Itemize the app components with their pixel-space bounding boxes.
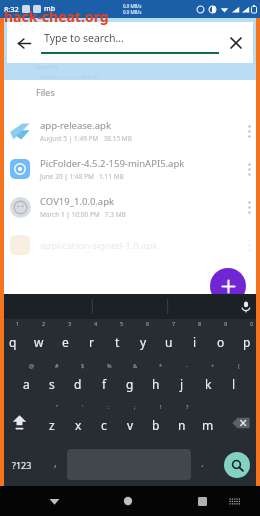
button[interactable]: Back (38, 486, 70, 516)
button[interactable]: More options (238, 112, 260, 150)
staticText: s (49, 376, 55, 392)
staticText: . (201, 456, 204, 470)
staticText: v (127, 417, 134, 433)
button[interactable]: Clear (219, 26, 253, 60)
staticText: app-release.apk (40, 119, 112, 132)
staticText: COV19_1.0.0.apk (40, 195, 115, 208)
staticText: k (205, 376, 212, 392)
button[interactable]: m (195, 402, 221, 443)
button[interactable]: 3 (52, 319, 78, 361)
button[interactable]: + (195, 361, 221, 402)
button[interactable]: Switch keyboard (218, 486, 250, 516)
button[interactable]: application-signed-1.0.apk (0, 226, 260, 264)
button[interactable]: ' (65, 402, 91, 443)
button[interactable]: More options (238, 226, 260, 264)
staticText: 5 (120, 320, 124, 327)
staticText: l (232, 376, 236, 392)
button[interactable]: 7 (156, 319, 182, 361)
button[interactable]: * (143, 361, 169, 402)
button[interactable]: " (39, 402, 65, 443)
button[interactable]: 9 (208, 319, 234, 361)
button[interactable]: - (169, 361, 195, 402)
button[interactable]: . (191, 443, 214, 486)
staticText: Recents (36, 63, 59, 71)
button[interactable]: Search (224, 452, 250, 478)
button[interactable]: Back (7, 26, 41, 60)
button[interactable]: : (91, 402, 117, 443)
button[interactable]: Shift (0, 402, 39, 443)
staticText: y (140, 334, 147, 350)
button[interactable]: app-release.apk (0, 112, 260, 150)
button[interactable]: & (117, 361, 143, 402)
button[interactable]: ? (169, 402, 195, 443)
button[interactable]: COV19_1.0.0.apk (0, 188, 260, 226)
staticText: m (202, 417, 214, 433)
staticText: ? (186, 403, 189, 410)
button[interactable]: @ (13, 361, 39, 402)
staticText: 0.0 MB/s (123, 3, 142, 9)
button[interactable]: PicFolder-4.5.2-159-minAPI5.apk (0, 150, 260, 188)
staticText: & (133, 362, 138, 369)
button[interactable]: Add (210, 268, 246, 304)
button[interactable]: ; (117, 402, 143, 443)
staticText: p (243, 334, 251, 350)
staticText: March 1 | 10:00 PM 7.3 MB (40, 210, 126, 219)
button[interactable]: # (39, 361, 65, 402)
staticText: mb (44, 4, 55, 14)
staticText: $ (81, 362, 85, 369)
staticText: w (34, 334, 44, 350)
staticText: June 20 | 1:48 PM 1.11 MB (40, 172, 124, 181)
staticText: ' (82, 403, 84, 410)
button[interactable]: Voice input (238, 299, 254, 315)
button[interactable]: 6 (130, 319, 156, 361)
staticText: u (165, 334, 173, 350)
staticText: , (54, 456, 57, 470)
staticText: Files (36, 86, 55, 98)
staticText: + (211, 362, 215, 369)
staticText: @ (29, 362, 34, 369)
staticText: 0.0 MB/s (123, 9, 142, 15)
button[interactable]: 2 (26, 319, 52, 361)
button[interactable]: ?123 (0, 443, 44, 486)
staticText: n (178, 417, 186, 433)
staticText: 1 (16, 320, 20, 327)
button[interactable]: 1 (0, 319, 26, 361)
staticText: hack-cheat.org (4, 7, 109, 26)
staticText: * (159, 362, 163, 369)
staticText: ( (238, 362, 240, 369)
staticText: 8 (198, 320, 202, 327)
button[interactable]: Recent apps (186, 486, 218, 516)
staticText: x (75, 417, 82, 433)
button[interactable]: 0 (234, 319, 260, 361)
staticText: 0 (250, 320, 254, 327)
button[interactable]: 8 (182, 319, 208, 361)
button[interactable]: 5 (104, 319, 130, 361)
staticText: % (107, 362, 112, 369)
button[interactable]: ! (143, 402, 169, 443)
staticText: a (23, 376, 30, 392)
button[interactable]: $ (65, 361, 91, 402)
button[interactable]: More options (238, 150, 260, 188)
staticText: b (152, 417, 160, 433)
button[interactable]: % (91, 361, 117, 402)
staticText: 8:32 (4, 4, 19, 14)
staticText: 9 (224, 320, 228, 327)
staticText: e (62, 334, 69, 350)
staticText: # (55, 362, 59, 369)
staticText: i (193, 334, 197, 350)
button[interactable]: 4 (78, 319, 104, 361)
staticText: g (126, 376, 134, 392)
staticText: - (186, 362, 188, 369)
button[interactable]: ( (221, 361, 247, 402)
staticText: r (89, 334, 94, 350)
button[interactable]: More options (238, 188, 260, 226)
staticText: Type to search... (44, 31, 124, 45)
staticText: August 5 | 1:49 PM 38.15 MB (40, 134, 132, 143)
button[interactable]: , (44, 443, 67, 486)
staticText: c (101, 417, 107, 433)
staticText: 2 (42, 320, 46, 327)
button[interactable]: Type to search... (41, 22, 219, 63)
button[interactable]: Home (112, 486, 144, 516)
button[interactable]: Backspace (221, 402, 260, 443)
